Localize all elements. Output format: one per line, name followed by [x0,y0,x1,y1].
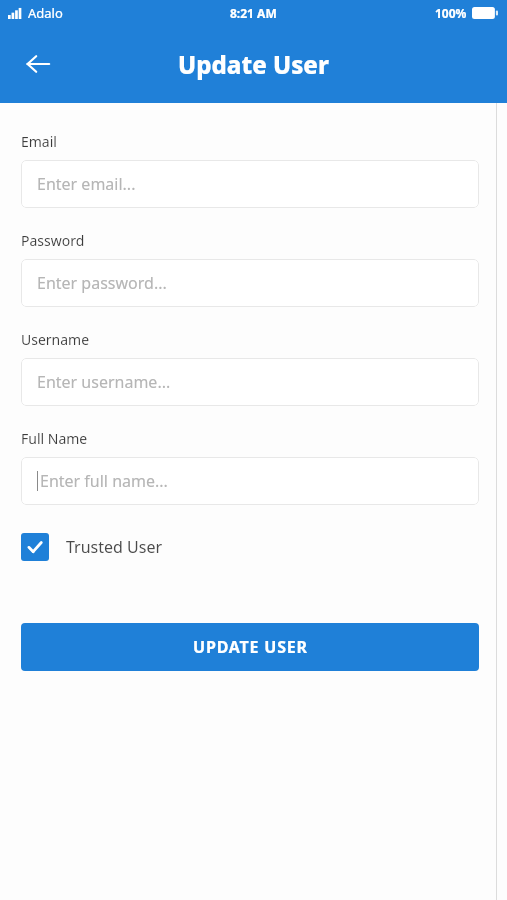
staticText: Email [21,132,57,151]
staticText: Username [21,330,90,349]
staticText: Password [21,231,85,250]
staticText: UPDATE USER [193,636,308,658]
button[interactable]: Enter username... [21,358,479,406]
staticText: Trusted User [66,536,163,558]
staticText: Enter email... [37,173,136,195]
button[interactable]: Enter full name... [21,457,479,505]
staticText: 8:21 AM [230,5,277,21]
button[interactable]: UPDATE USER [21,623,479,671]
button[interactable]: Enter email... [21,160,479,208]
staticText: Full Name [21,429,88,448]
staticText: Enter full name... [40,470,168,492]
button[interactable]: Enter password... [21,259,479,307]
staticText: Enter username... [37,371,171,393]
staticText: 100% [435,5,467,21]
staticText: Update User [178,48,329,81]
staticText: Adalo [28,4,63,22]
staticText: Enter password... [37,272,167,294]
button[interactable]: Trusted User [21,531,163,563]
button[interactable]: Back [14,40,62,88]
